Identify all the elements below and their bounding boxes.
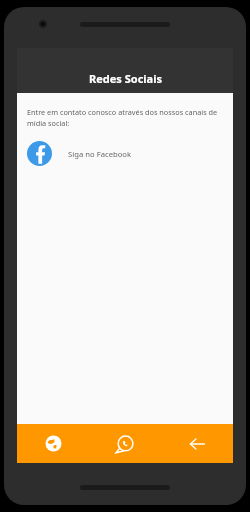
staticText: Redes Sociais (89, 71, 162, 86)
staticText: Entre em contato conosco através dos nos… (27, 107, 223, 128)
button[interactable]: Back (161, 424, 233, 463)
button[interactable]: Website (17, 424, 89, 463)
staticText: Siga no Facebook (68, 149, 132, 159)
button[interactable]: WhatsApp (89, 424, 161, 463)
button[interactable]: Siga no Facebook (27, 141, 223, 166)
